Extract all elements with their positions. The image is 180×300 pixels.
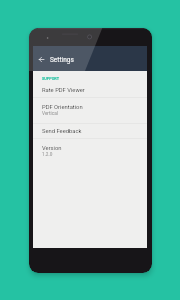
staticText: Send Feedback xyxy=(42,128,82,135)
button[interactable]: PDF Orientation xyxy=(33,98,147,123)
button[interactable]: Send Feedback xyxy=(33,124,147,138)
button[interactable]: Rate PDF Viewer xyxy=(33,83,147,97)
button[interactable]: Version xyxy=(33,139,147,164)
staticText: PDF Orientation xyxy=(42,104,83,111)
staticText: 1.2.0 xyxy=(42,152,53,158)
staticText: Rate PDF Viewer xyxy=(42,87,85,94)
staticText: Vertical xyxy=(42,111,58,117)
staticText: Settings xyxy=(50,56,74,64)
staticText: Version xyxy=(42,145,62,152)
staticText: SUPPORT xyxy=(42,76,60,80)
button[interactable]: Back xyxy=(36,54,47,65)
